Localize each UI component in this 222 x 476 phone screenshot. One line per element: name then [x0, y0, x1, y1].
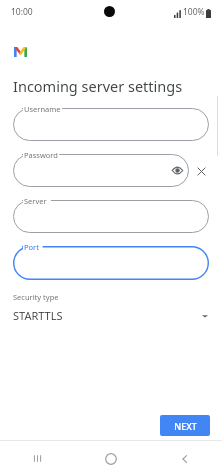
button[interactable]: Password: [13, 154, 189, 187]
button[interactable]: Username: [13, 108, 209, 141]
staticText: Security type: [13, 292, 59, 302]
staticText: 100%: [183, 6, 205, 18]
staticText: Server: [24, 196, 47, 206]
staticText: NEXT: [174, 420, 197, 432]
button[interactable]: Home: [74, 441, 148, 476]
button[interactable]: Back: [148, 441, 222, 476]
button[interactable]: Security type: [13, 292, 209, 323]
staticText: Incoming server settings: [13, 76, 183, 96]
button[interactable]: Show password: [172, 165, 183, 176]
staticText: 10:00: [11, 6, 33, 18]
button[interactable]: Server: [13, 200, 209, 233]
button[interactable]: Recent apps: [0, 441, 74, 476]
staticText: STARTTLS: [13, 308, 63, 323]
button[interactable]: Port: [13, 246, 209, 280]
button[interactable]: Clear password: [193, 163, 209, 179]
button[interactable]: NEXT: [160, 415, 210, 436]
staticText: Username: [24, 104, 61, 114]
staticText: Port: [24, 242, 39, 252]
staticText: Password: [24, 150, 58, 160]
